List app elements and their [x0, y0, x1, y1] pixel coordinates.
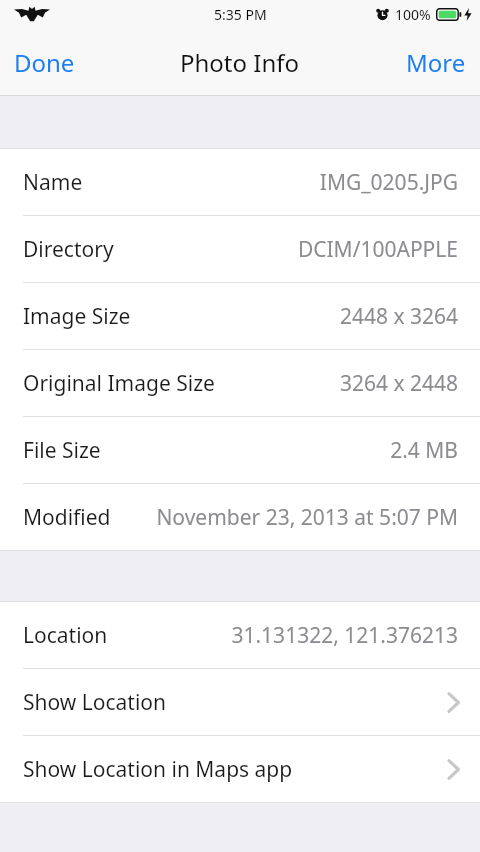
button[interactable]: Image Size [0, 283, 480, 349]
staticText: 2448 x 3264 [339, 302, 458, 331]
staticText: IMG_0205.JPG [319, 168, 458, 197]
staticText: DCIM/100APPLE [297, 235, 458, 264]
staticText: 3264 x 2448 [339, 369, 458, 398]
staticText: Modified [23, 503, 111, 532]
staticText: November 23, 2013 at 5:07 PM [156, 503, 458, 532]
button[interactable]: Original Image Size [0, 350, 480, 416]
staticText: More [406, 46, 466, 79]
button[interactable]: Name [0, 149, 480, 215]
button[interactable]: More [392, 36, 480, 89]
staticText: Name [23, 168, 83, 197]
button[interactable]: Done [0, 36, 89, 89]
staticText: 2.4 MB [390, 436, 458, 465]
staticText: Image Size [23, 302, 131, 331]
button[interactable]: Directory [0, 216, 480, 282]
staticText: Photo Info [180, 46, 300, 79]
staticText: 100% [395, 5, 431, 24]
staticText: Directory [23, 235, 114, 264]
button[interactable]: Show Location in Maps app [0, 736, 480, 802]
staticText: Location [23, 621, 108, 650]
staticText: 31.131322, 121.376213 [231, 621, 458, 650]
staticText: Show Location in Maps app [23, 755, 293, 784]
button[interactable]: Location [0, 602, 480, 668]
staticText: File Size [23, 436, 101, 465]
staticText: Original Image Size [23, 369, 215, 398]
button[interactable]: Modified [0, 484, 480, 550]
button[interactable]: Show Location [0, 669, 480, 735]
staticText: 5:35 PM [214, 5, 267, 24]
staticText: Show Location [23, 688, 167, 717]
staticText: Done [14, 46, 75, 79]
button[interactable]: File Size [0, 417, 480, 483]
